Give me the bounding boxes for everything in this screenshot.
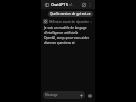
staticText: o1-preview (69, 3, 80, 7)
button[interactable]: Quelle version de gpt est-ce (48, 11, 93, 17)
staticText: diverses questions et informations (44, 41, 91, 45)
button[interactable]: Message (43, 91, 85, 99)
button[interactable]: Open sidebar (43, 1, 50, 8)
button[interactable]: New chat (80, 1, 87, 8)
button[interactable]: Réflexion avant de répondre (43, 19, 93, 24)
staticText: Message (45, 93, 58, 97)
button[interactable]: Voice mode (86, 92, 93, 99)
staticText: Je suis un modèle de langage (44, 26, 87, 30)
staticText: Quelle version de gpt est-ce (50, 12, 91, 16)
staticText: d'intelligence artificielle développé pa… (44, 31, 91, 35)
button[interactable]: More options (87, 2, 93, 8)
button[interactable]: Attach file (79, 93, 83, 97)
staticText: ChatGPT 5 (51, 2, 68, 7)
button[interactable]: ChatGPT 5 (51, 2, 80, 7)
staticText: Réflexion avant de répondre (49, 20, 89, 24)
staticText: OpenAI, conçu pour vous aider avec (44, 36, 91, 40)
